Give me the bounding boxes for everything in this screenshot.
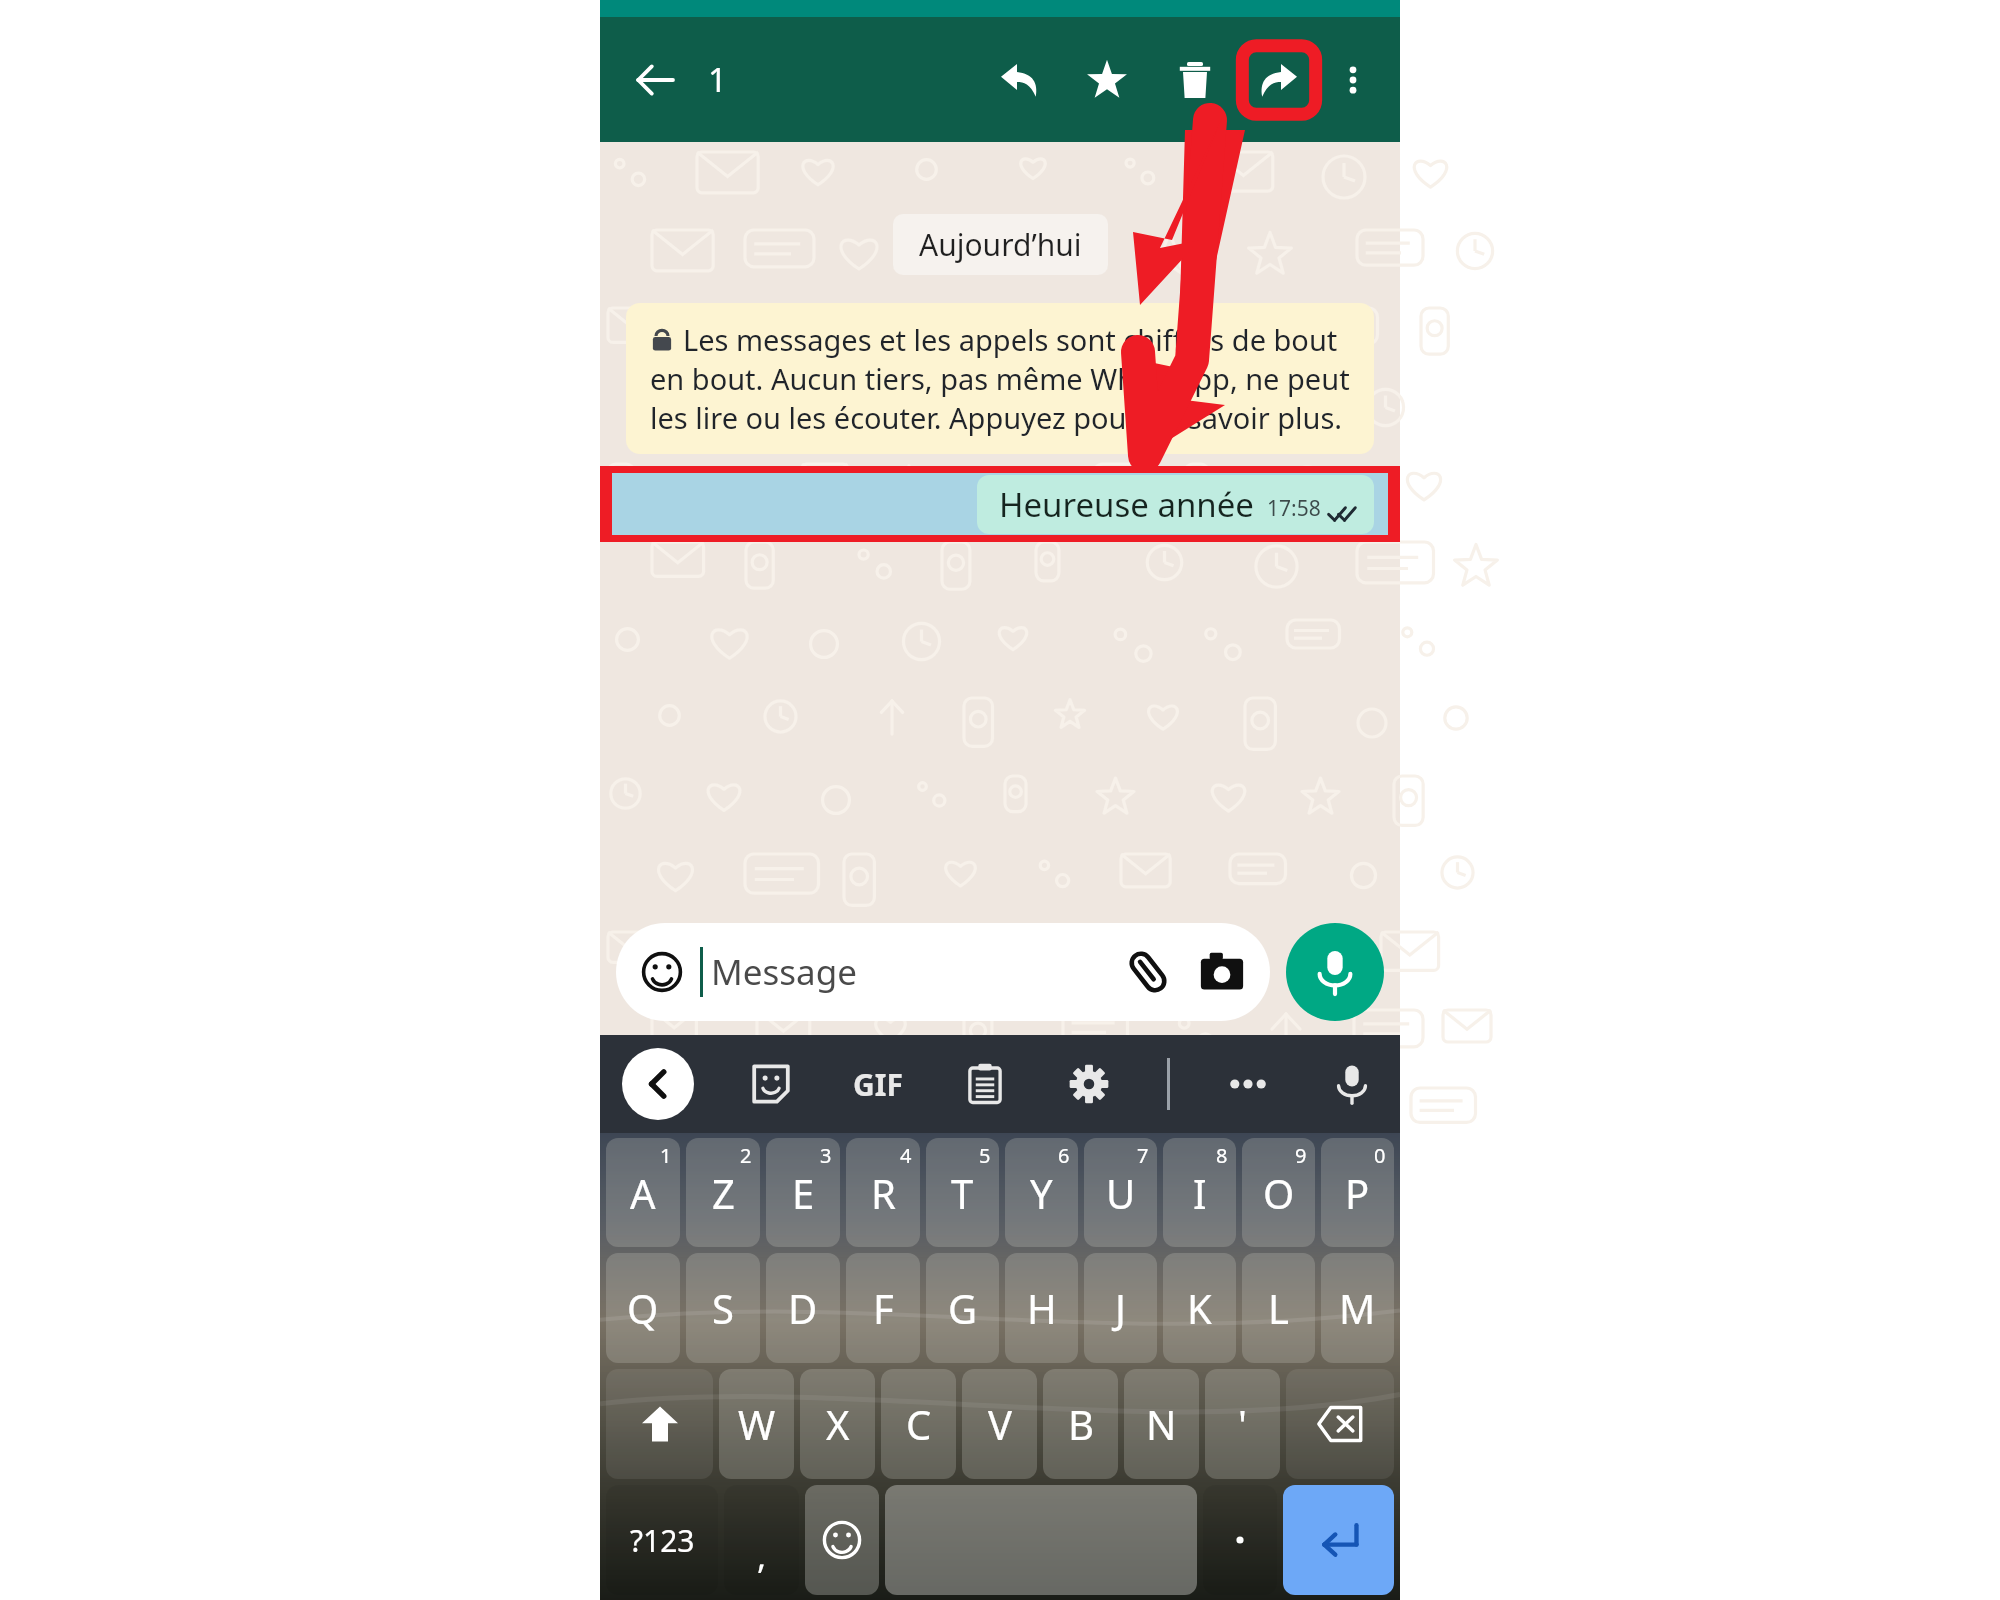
staticText: 6	[1058, 1142, 1070, 1169]
button[interactable]	[805, 1485, 879, 1595]
staticText: '	[1238, 1397, 1247, 1451]
button[interactable]: Q	[606, 1253, 680, 1363]
button[interactable]: T	[926, 1138, 999, 1247]
button[interactable]: E	[766, 1138, 840, 1247]
button[interactable]: J	[1084, 1253, 1157, 1363]
button[interactable]: P	[1321, 1138, 1394, 1247]
button[interactable]: More	[1222, 1058, 1274, 1110]
button[interactable]	[1203, 1485, 1277, 1595]
staticText: J	[1115, 1281, 1126, 1335]
staticText: Message	[711, 948, 857, 996]
staticText: en bout. Aucun tiers, pas même WhatsApp,…	[650, 359, 1350, 398]
button[interactable]: Back	[622, 1048, 694, 1120]
staticText: M	[1339, 1281, 1376, 1335]
button[interactable]: C	[881, 1369, 956, 1479]
button[interactable]: H	[1005, 1253, 1078, 1363]
button[interactable]: L	[1242, 1253, 1315, 1363]
button[interactable]	[606, 1369, 713, 1479]
staticText: Les messages et les appels sont chiffrés…	[683, 320, 1338, 359]
staticText: O	[1263, 1166, 1295, 1220]
button[interactable]	[1286, 1369, 1394, 1479]
button[interactable]: X	[800, 1369, 875, 1479]
staticText: Heureuse année	[999, 482, 1254, 527]
button[interactable]: ?123	[606, 1485, 718, 1595]
staticText: Q	[627, 1281, 659, 1335]
button[interactable]: Voice input	[1326, 1058, 1378, 1110]
button[interactable]	[1283, 1485, 1394, 1595]
staticText: Y	[1030, 1166, 1053, 1220]
button[interactable]: O	[1242, 1138, 1315, 1247]
staticText: F	[873, 1281, 894, 1335]
button[interactable]: Clipboard	[959, 1058, 1011, 1110]
staticText: G	[948, 1281, 978, 1335]
staticText: H	[1027, 1281, 1057, 1335]
button[interactable]: S	[686, 1253, 760, 1363]
staticText: W	[738, 1397, 776, 1451]
button[interactable]: Delete	[1162, 47, 1228, 113]
button[interactable]: Camera	[1196, 946, 1248, 998]
button[interactable]: B	[1043, 1369, 1118, 1479]
staticText: 5	[979, 1142, 991, 1169]
staticText: S	[712, 1281, 734, 1335]
button[interactable]: Z	[686, 1138, 760, 1247]
button[interactable]: '	[1205, 1369, 1280, 1479]
staticText: 4	[900, 1142, 912, 1169]
staticText: ?123	[630, 1520, 695, 1561]
staticText: 17:58	[1267, 494, 1321, 523]
button[interactable]: More options	[1324, 51, 1382, 109]
staticText: E	[792, 1166, 815, 1220]
staticText: D	[788, 1281, 818, 1335]
button[interactable]: R	[846, 1138, 920, 1247]
staticText: K	[1187, 1281, 1212, 1335]
button[interactable]: Back	[624, 49, 686, 111]
button[interactable]: Emoji	[616, 923, 1270, 1021]
button[interactable]: Star	[1074, 47, 1140, 113]
staticText: 9	[1295, 1142, 1307, 1169]
button[interactable]: M	[1321, 1253, 1394, 1363]
staticText: ,	[757, 1533, 767, 1579]
staticText: N	[1146, 1397, 1177, 1451]
button[interactable]: Voice message	[1286, 923, 1384, 1021]
button[interactable]: F	[846, 1253, 920, 1363]
button[interactable]: Forward	[1240, 41, 1318, 119]
button[interactable]: Heureuse année	[612, 473, 1388, 535]
staticText: I	[1193, 1166, 1207, 1220]
staticText: R	[871, 1166, 896, 1220]
staticText: L	[1268, 1281, 1289, 1335]
staticText: 2	[740, 1142, 752, 1169]
button[interactable]: Attach	[1122, 946, 1174, 998]
button[interactable]: I	[1163, 1138, 1236, 1247]
button[interactable]: Reply	[986, 47, 1052, 113]
button[interactable]: V	[962, 1369, 1037, 1479]
button[interactable]: Stickers	[745, 1058, 797, 1110]
button[interactable]: Emoji	[638, 948, 686, 996]
staticText: B	[1068, 1397, 1094, 1451]
button[interactable]: ,	[724, 1485, 799, 1595]
staticText: 8	[1216, 1142, 1228, 1169]
staticText: 7	[1137, 1142, 1149, 1169]
button[interactable]: K	[1163, 1253, 1236, 1363]
staticText: T	[951, 1166, 974, 1220]
staticText: 1	[660, 1142, 672, 1169]
staticText: GIF	[853, 1064, 903, 1105]
button[interactable]: GIF	[849, 1060, 907, 1109]
button[interactable]	[885, 1485, 1197, 1595]
staticText: Aujourd’hui	[919, 224, 1082, 265]
button[interactable]: Les messages et les appels sont chiffrés…	[626, 303, 1374, 454]
staticText: X	[826, 1397, 850, 1451]
button[interactable]: N	[1124, 1369, 1199, 1479]
button[interactable]: Y	[1005, 1138, 1078, 1247]
staticText: C	[906, 1397, 932, 1451]
staticText: les lire ou les écouter. Appuyez pour en…	[650, 398, 1343, 437]
staticText: 3	[820, 1142, 832, 1169]
button[interactable]: W	[719, 1369, 794, 1479]
button[interactable]: D	[766, 1253, 840, 1363]
button[interactable]: Aujourd’hui	[893, 214, 1108, 275]
staticText: 0	[1374, 1142, 1386, 1169]
button[interactable]: G	[926, 1253, 999, 1363]
button[interactable]: Settings	[1063, 1058, 1115, 1110]
staticText: Z	[712, 1166, 735, 1220]
staticText: A	[630, 1166, 656, 1220]
button[interactable]: U	[1084, 1138, 1157, 1247]
button[interactable]: A	[606, 1138, 680, 1247]
